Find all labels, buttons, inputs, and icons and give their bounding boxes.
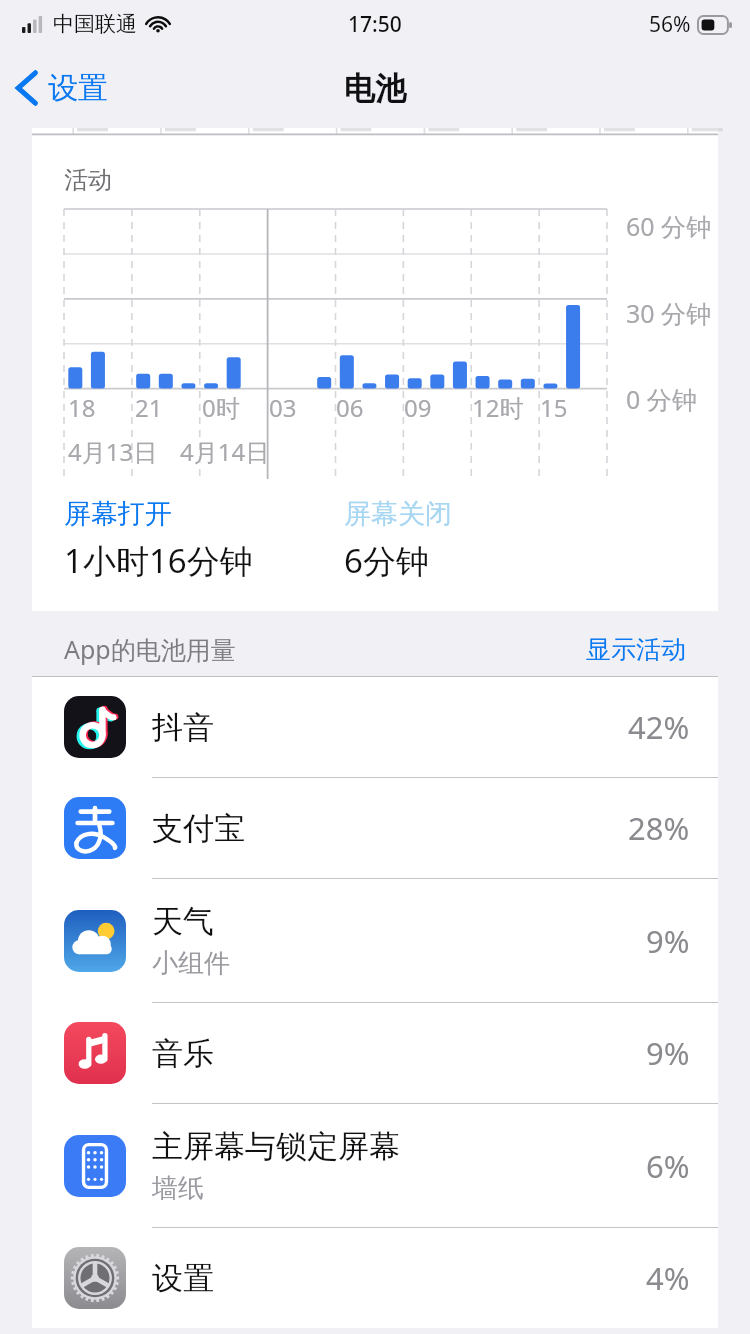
button[interactable]: 支付宝	[32, 778, 718, 878]
staticText: 抖音	[152, 708, 214, 747]
staticText: 1小时16分钟	[64, 538, 253, 583]
staticText: 支付宝	[152, 809, 245, 848]
staticText: 中国联通	[53, 11, 137, 37]
staticText: 4月13日	[68, 435, 158, 468]
staticText: 03	[269, 391, 297, 424]
staticText: 设置	[48, 69, 108, 107]
staticText: 6分钟	[344, 538, 429, 583]
staticText: 18	[68, 391, 96, 424]
button[interactable]: 抖音	[32, 677, 718, 777]
staticText: 28%	[628, 807, 690, 849]
button[interactable]: 设置	[32, 1228, 718, 1328]
staticText: 30 分钟	[626, 296, 712, 330]
staticText: 6%	[646, 1145, 690, 1187]
button[interactable]: 屏幕打开	[64, 497, 172, 531]
staticText: 15	[540, 391, 568, 424]
button[interactable]: 屏幕关闭	[344, 497, 452, 531]
staticText: 天气	[152, 902, 214, 941]
staticText: 0时	[202, 391, 240, 424]
button[interactable]: 设置	[0, 59, 122, 117]
staticText: 06	[336, 391, 364, 424]
staticText: 60 分钟	[626, 209, 712, 243]
staticText: 42%	[628, 706, 690, 748]
staticText: 音乐	[152, 1034, 214, 1073]
button[interactable]: 天气	[32, 879, 718, 1002]
staticText: 主屏幕与锁定屏幕	[152, 1127, 400, 1166]
staticText: 09	[404, 391, 432, 424]
staticText: 0 分钟	[626, 382, 697, 416]
staticText: 墙纸	[152, 1172, 204, 1205]
button[interactable]: 显示活动	[586, 634, 686, 665]
staticText: 9%	[646, 920, 690, 962]
staticText: 电池	[344, 69, 406, 108]
staticText: 活动	[64, 165, 112, 195]
staticText: 17:50	[348, 10, 402, 39]
staticText: 小组件	[152, 947, 230, 980]
staticText: 56%	[649, 10, 691, 39]
staticText: 12时	[472, 391, 524, 424]
staticText: App的电池用量	[64, 632, 236, 666]
staticText: 9%	[646, 1032, 690, 1074]
button[interactable]: 音乐	[32, 1003, 718, 1103]
staticText: 4月14日	[180, 435, 270, 468]
staticText: 4%	[646, 1257, 690, 1299]
button[interactable]: 主屏幕与锁定屏幕	[32, 1104, 718, 1227]
staticText: 设置	[152, 1259, 214, 1298]
staticText: 21	[135, 391, 163, 424]
